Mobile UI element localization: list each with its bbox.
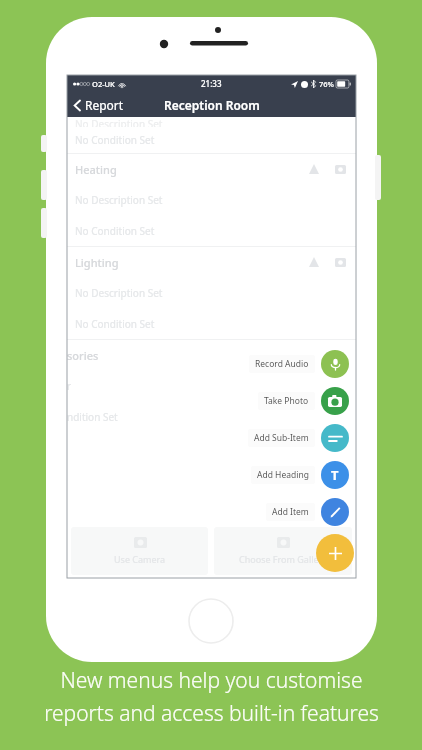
staticText: Take Photo [264,395,309,407]
staticText: Choose From Gallery [239,553,327,565]
staticText: No Condition Set [75,133,155,147]
staticText: Add Heading [257,469,309,481]
staticText: Record Audio [255,358,309,370]
button[interactable]: Choose From Gallery [214,527,352,575]
button[interactable]: Add Heading [67,461,356,489]
staticText: No Description Set [75,286,163,300]
staticText: reports and access built-in features [44,699,379,728]
staticText: T [331,466,339,484]
staticText: 76% [319,79,334,89]
staticText: No Description Set [75,117,163,127]
button[interactable]: Take Photo [67,387,356,415]
staticText: Report [85,97,124,113]
staticText: ndition Set [67,410,118,424]
staticText: 21:33 [201,78,222,89]
button[interactable]: Add Item [67,498,356,526]
button[interactable]: Report [73,97,124,113]
button[interactable]: Add [316,534,354,572]
staticText: Add Item [272,506,309,518]
staticText: Lighting [75,255,119,270]
staticText: New menus help you customise [60,666,363,695]
staticText: Use Camera [114,553,166,565]
staticText: Heating [75,162,117,177]
staticText: O2-UK [92,79,115,89]
staticText: No Condition Set [75,224,155,238]
staticText: r [67,379,72,393]
staticText: sories [67,348,99,363]
button[interactable]: Add Sub-Item [67,424,356,452]
staticText: Reception Room [164,97,260,113]
staticText: No Description Set [75,193,163,207]
staticText: No Condition Set [75,317,155,331]
staticText: Add Sub-Item [254,432,309,444]
button[interactable]: Record Audio [67,350,356,378]
